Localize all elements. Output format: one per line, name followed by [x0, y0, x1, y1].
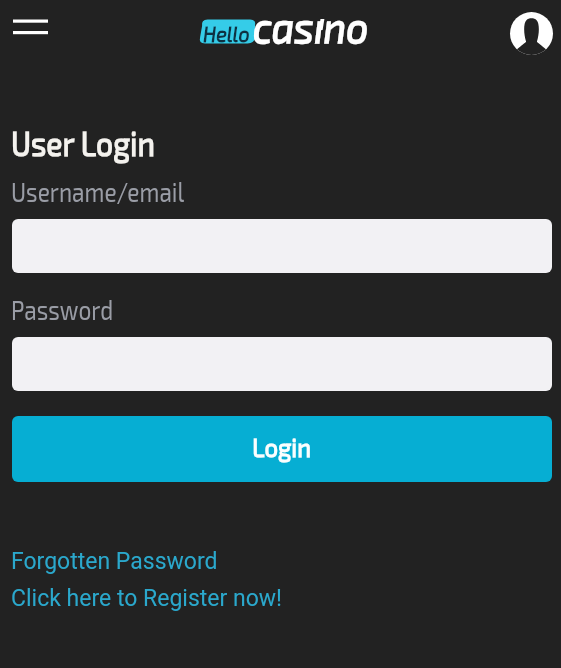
button[interactable]: Login	[12, 416, 552, 482]
button[interactable]	[12, 337, 552, 391]
button[interactable]	[12, 219, 552, 273]
staticText: Forgotten Password	[11, 548, 218, 575]
button[interactable]: Forgotten Password	[11, 548, 218, 575]
staticText: Hello	[203, 20, 250, 46]
staticText: casino	[253, 0, 369, 52]
staticText: Login	[252, 431, 312, 463]
staticText: Click here to Register now!	[11, 585, 283, 612]
button[interactable]: Menu	[3, 6, 58, 48]
button[interactable]: Account	[506, 8, 556, 58]
staticText: Username/email	[11, 175, 185, 207]
staticText: Password	[11, 293, 113, 325]
staticText: User Login	[11, 122, 155, 163]
button[interactable]: Click here to Register now!	[11, 585, 283, 612]
